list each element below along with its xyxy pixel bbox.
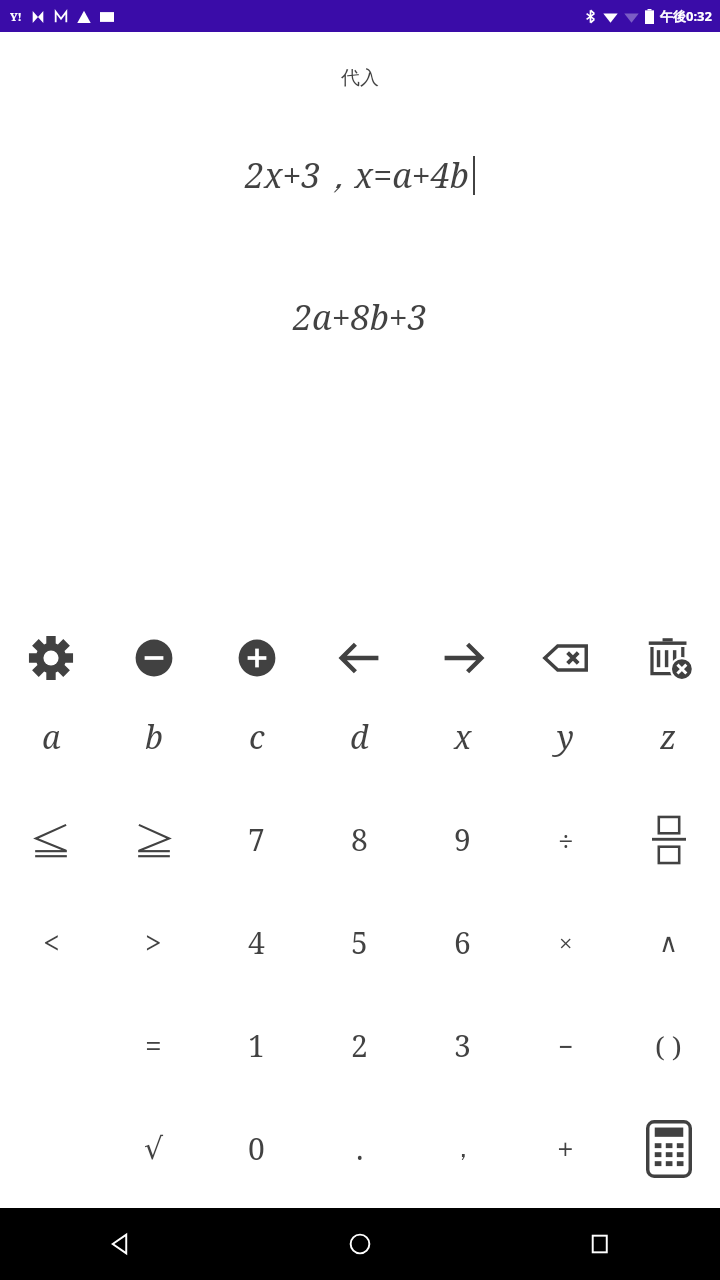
button[interactable]: √ <box>102 1097 205 1200</box>
button[interactable]: 1 <box>205 994 308 1097</box>
button[interactable]: . <box>308 1097 411 1200</box>
button[interactable]: Move right <box>411 631 514 685</box>
staticText: b <box>145 715 163 759</box>
staticText: 1 <box>248 1025 265 1066</box>
button[interactable]: 9 <box>411 788 514 891</box>
button[interactable]: Home <box>240 1208 480 1280</box>
staticText: ∧ <box>659 928 679 958</box>
staticText: ， <box>450 1132 476 1165</box>
button[interactable]: fraction <box>617 788 720 891</box>
staticText: x <box>454 715 472 759</box>
staticText: √ <box>144 1131 164 1166</box>
staticText: + <box>557 1128 574 1169</box>
button[interactable]: less than or equal <box>0 788 102 891</box>
button[interactable]: greater than or equal <box>102 788 205 891</box>
button[interactable]: Back <box>0 1208 240 1280</box>
button[interactable]: a <box>0 685 102 788</box>
staticText: 3 <box>454 1025 471 1066</box>
button[interactable]: 8 <box>308 788 411 891</box>
staticText: . <box>356 1128 364 1169</box>
button[interactable]: > <box>102 891 205 994</box>
button[interactable]: z <box>617 685 720 788</box>
button[interactable]: Increase font <box>205 631 308 685</box>
staticText: 9 <box>454 819 471 860</box>
staticText: 0 <box>248 1128 265 1169</box>
button[interactable]: Clear all <box>617 631 720 685</box>
button[interactable]: − <box>514 994 617 1097</box>
button[interactable]: = <box>102 994 205 1097</box>
staticText: z <box>660 715 677 759</box>
button[interactable]: 6 <box>411 891 514 994</box>
staticText: a <box>42 715 61 759</box>
staticText: c <box>249 715 265 759</box>
staticText: < <box>43 922 60 963</box>
button[interactable]: ∧ <box>617 891 720 994</box>
button[interactable]: Move left <box>308 631 411 685</box>
button[interactable]: 5 <box>308 891 411 994</box>
staticText: 代入 <box>0 66 720 90</box>
staticText: > <box>145 922 162 963</box>
button[interactable]: ÷ <box>514 788 617 891</box>
staticText: 2 <box>351 1025 368 1066</box>
button[interactable]: x <box>411 685 514 788</box>
staticText: = <box>145 1025 162 1066</box>
button[interactable]: d <box>308 685 411 788</box>
staticText: 5 <box>351 922 368 963</box>
staticText: 6 <box>454 922 471 963</box>
button[interactable]: ( ) <box>617 994 720 1097</box>
button[interactable]: × <box>514 891 617 994</box>
button[interactable]: ， <box>411 1097 514 1200</box>
button[interactable]: Decrease font <box>102 631 205 685</box>
staticText: 7 <box>248 819 265 860</box>
button[interactable]: Backspace <box>514 631 617 685</box>
staticText: 2x+3，x=a+4b <box>245 152 469 198</box>
staticText: ÷ <box>558 821 574 859</box>
button[interactable]: Calculator <box>617 1097 720 1200</box>
button[interactable]: 2 <box>308 994 411 1097</box>
staticText: 2a+8b+3 <box>293 294 427 340</box>
staticText: × <box>559 926 573 959</box>
staticText: y <box>557 715 574 759</box>
button[interactable]: Settings <box>0 631 102 685</box>
button[interactable]: b <box>102 685 205 788</box>
button[interactable]: y <box>514 685 617 788</box>
staticText: 4 <box>248 922 265 963</box>
staticText: ( ) <box>655 1027 682 1065</box>
button[interactable]: < <box>0 891 102 994</box>
button[interactable]: Recents <box>480 1208 720 1280</box>
staticText: − <box>558 1028 574 1063</box>
staticText: d <box>350 715 369 759</box>
button[interactable]: 7 <box>205 788 308 891</box>
staticText: Y! <box>10 9 22 24</box>
button[interactable]: 4 <box>205 891 308 994</box>
button[interactable]: 3 <box>411 994 514 1097</box>
button[interactable]: 0 <box>205 1097 308 1200</box>
button[interactable]: + <box>514 1097 617 1200</box>
staticText: 午後0:32 <box>660 7 712 25</box>
button[interactable]: c <box>205 685 308 788</box>
staticText: 8 <box>351 819 368 860</box>
